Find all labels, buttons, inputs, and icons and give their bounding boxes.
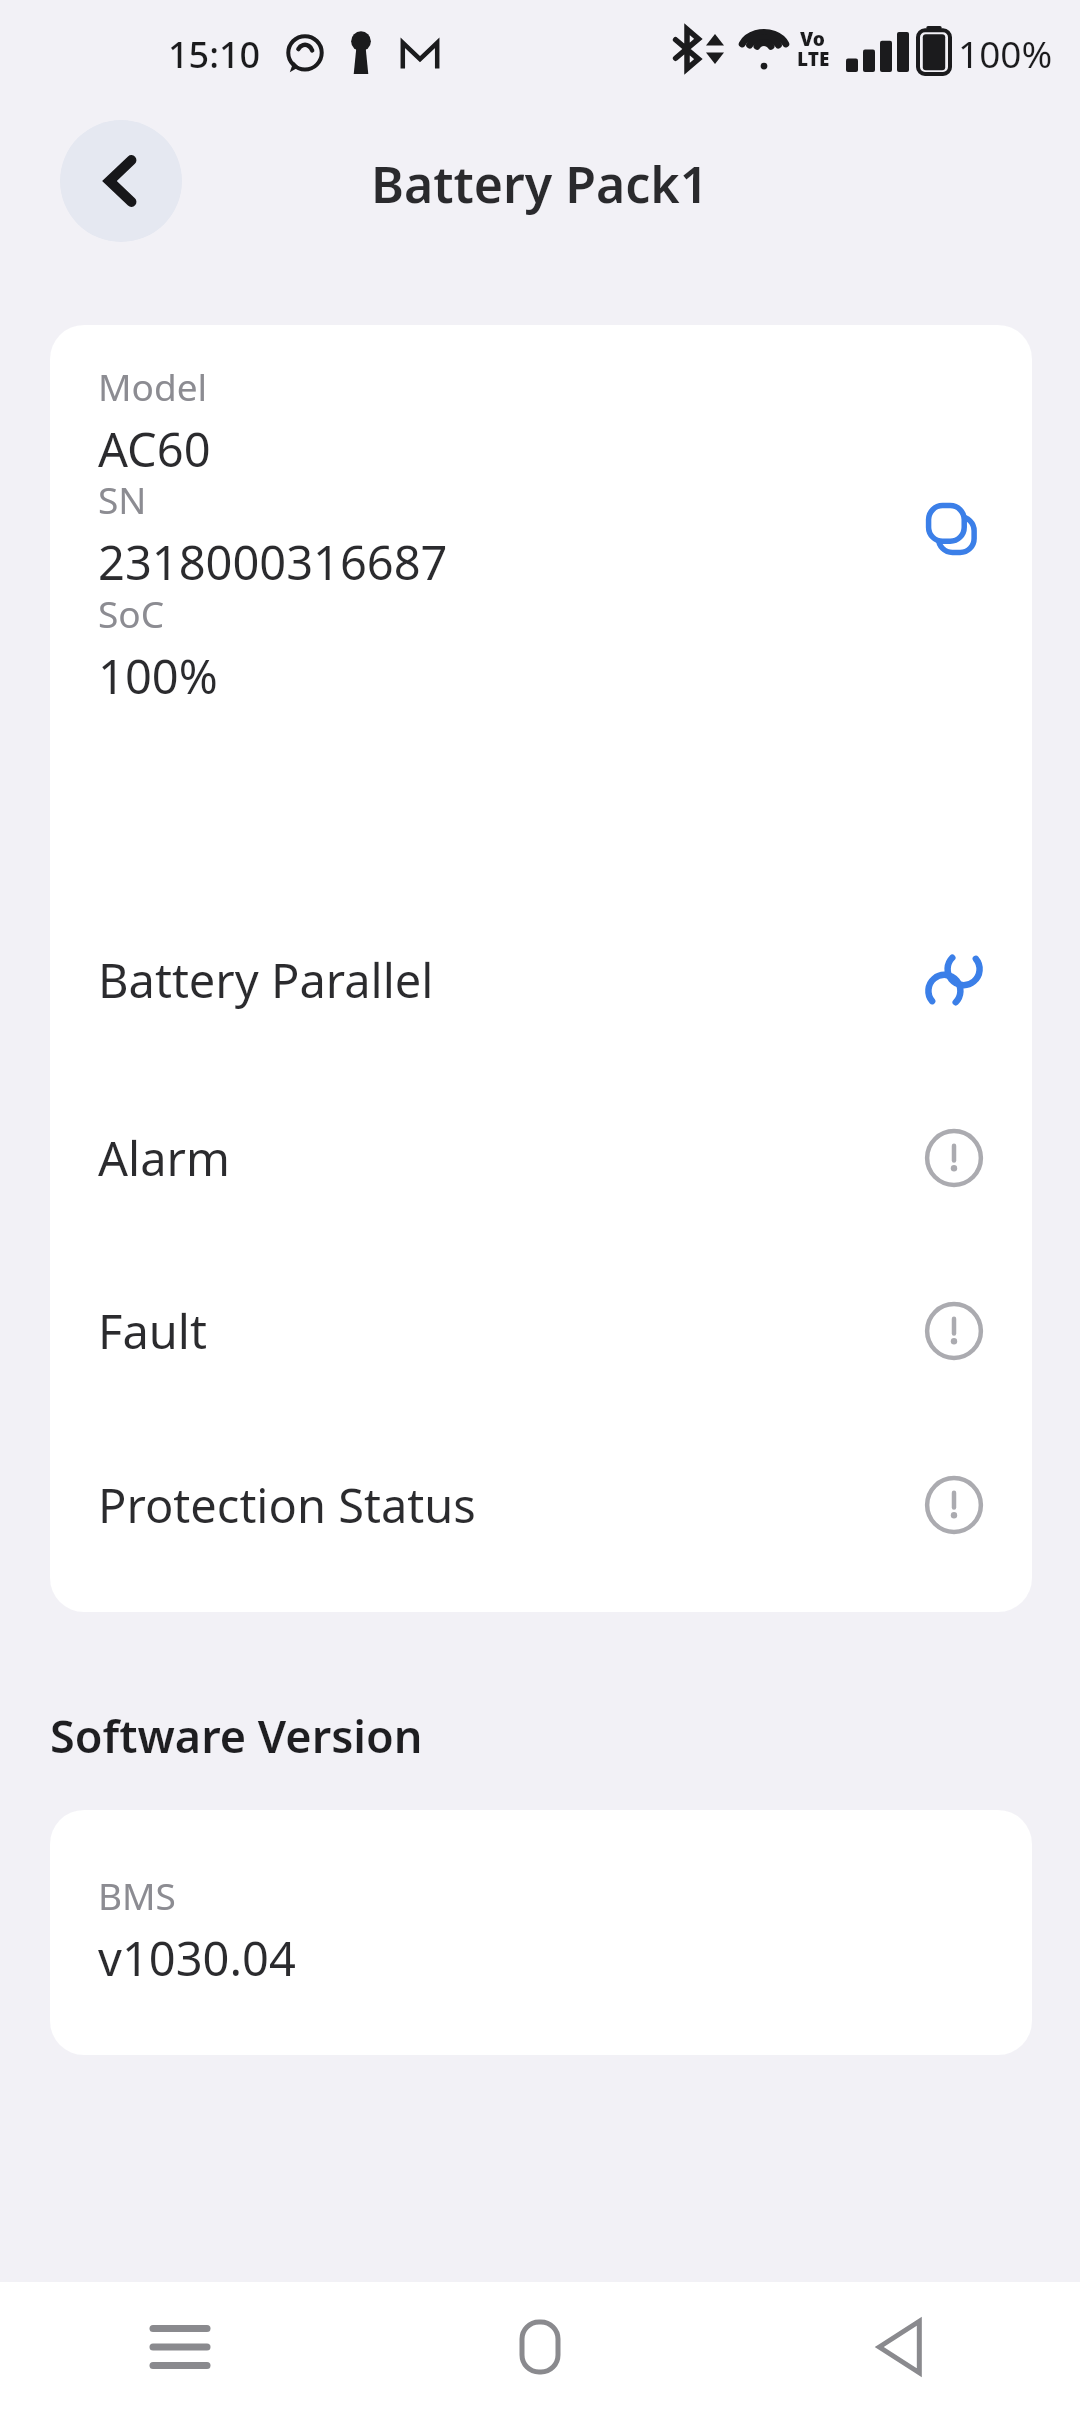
- button[interactable]: Recent apps: [0, 2282, 360, 2412]
- button[interactable]: Fault: [50, 1283, 1032, 1379]
- staticText: Fault: [98, 1299, 922, 1363]
- button[interactable]: SN: [50, 474, 1032, 586]
- button[interactable]: Model: [50, 361, 1032, 473]
- other: Battery parallel: [922, 948, 986, 1012]
- button[interactable]: Battery Parallel: [50, 932, 1032, 1028]
- staticText: BMS: [98, 1870, 176, 1920]
- other: Status details: [922, 1299, 986, 1363]
- button[interactable]: Protection Status: [50, 1457, 1032, 1553]
- staticText: Vo: [800, 26, 825, 52]
- staticText: Model: [98, 361, 208, 411]
- staticText: Battery Parallel: [98, 948, 922, 1012]
- staticText: SoC: [98, 588, 165, 638]
- staticText: 100%: [958, 28, 1053, 78]
- button[interactable]: Home: [360, 2282, 720, 2412]
- staticText: 100%: [98, 644, 218, 700]
- other: Copy serial number: [920, 497, 986, 563]
- button[interactable]: Alarm: [50, 1110, 1032, 1206]
- button[interactable]: SoC: [50, 588, 1032, 700]
- staticText: Software Version: [50, 1705, 423, 1766]
- staticText: v1030.04: [98, 1926, 296, 1990]
- staticText: 15:10: [168, 30, 261, 79]
- staticText: SN: [98, 474, 147, 524]
- staticText: AC60: [98, 417, 211, 473]
- staticText: LTE: [797, 46, 830, 72]
- staticText: Battery Pack1: [371, 150, 709, 218]
- staticText: Alarm: [98, 1126, 922, 1190]
- button[interactable]: Back: [720, 2282, 1080, 2412]
- other: Status details: [922, 1473, 986, 1537]
- other: Status details: [922, 1126, 986, 1190]
- button[interactable]: Back: [60, 120, 182, 242]
- staticText: 2318000316687: [98, 530, 448, 586]
- button[interactable]: BMS: [50, 1810, 1032, 2055]
- staticText: Protection Status: [98, 1473, 922, 1537]
